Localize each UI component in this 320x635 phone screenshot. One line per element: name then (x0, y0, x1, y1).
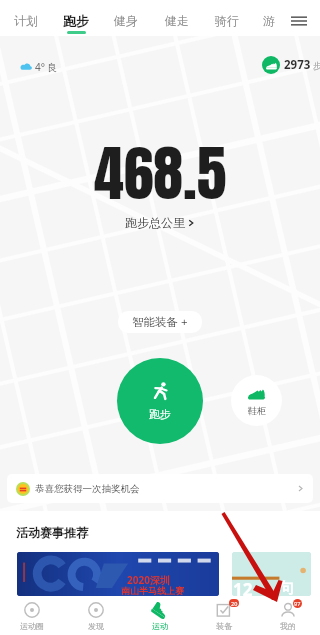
button[interactable]: 97 (256, 596, 320, 635)
staticText: 我的 (280, 621, 296, 631)
staticText: 2020深圳 (127, 573, 170, 587)
button[interactable]: 计划 (8, 6, 44, 34)
button[interactable]: 游 (258, 6, 280, 34)
staticText: 智能装备 + (132, 314, 188, 330)
staticText: 骑行 (215, 13, 239, 28)
staticText: 跑步总公里 (125, 215, 185, 230)
staticText: 97 (294, 600, 301, 607)
staticText: 恭喜您获得一次抽奖机会 (35, 483, 140, 495)
button[interactable]: 跑步总公里 (125, 215, 195, 230)
button[interactable]: 骑行 (209, 6, 245, 34)
button[interactable]: 跑步 (117, 358, 203, 444)
staticText: 发现 (88, 621, 104, 631)
button[interactable]: 跑步 (58, 6, 94, 34)
button[interactable]: 运动圈 (0, 596, 64, 635)
staticText: 2973 (284, 57, 311, 73)
button[interactable]: Menu (288, 10, 309, 31)
staticText: 健走 (165, 13, 189, 28)
staticText: 跑步 (149, 407, 171, 421)
staticText: 计划 (14, 13, 38, 28)
staticText: 12 (233, 578, 253, 596)
staticText: 健身 (114, 13, 138, 28)
button[interactable]: 2020深圳 (17, 552, 219, 596)
staticText: 4° 良 (35, 60, 58, 74)
button[interactable]: 健身 (108, 6, 144, 34)
button[interactable]: 智能装备 + (118, 311, 202, 333)
button[interactable]: 20 (192, 596, 256, 635)
button[interactable]: 恭喜您获得一次抽奖机会 (7, 474, 313, 503)
staticText: 运动 (152, 621, 168, 631)
staticText: 20 (231, 600, 238, 607)
staticText: 步 (313, 60, 320, 71)
button[interactable]: 健走 (159, 6, 195, 34)
button[interactable]: 4° 良 (20, 60, 58, 74)
staticText: 活动赛事推荐 (16, 525, 88, 540)
staticText: 鞋柜 (248, 405, 266, 416)
staticText: 游 (263, 13, 275, 28)
button[interactable]: 2973 (262, 56, 320, 74)
staticText: 装备 (216, 621, 232, 631)
button[interactable]: 运动 (128, 596, 192, 635)
staticText: 468.5 (94, 128, 227, 218)
staticText: 南山半马线上赛 (121, 585, 184, 596)
staticText: 句 (279, 579, 294, 596)
staticText: 运动圈 (20, 621, 44, 631)
button[interactable]: 发现 (64, 596, 128, 635)
button[interactable]: 12 (232, 552, 311, 596)
staticText: 跑步 (63, 13, 89, 29)
button[interactable]: 鞋柜 (231, 375, 282, 426)
